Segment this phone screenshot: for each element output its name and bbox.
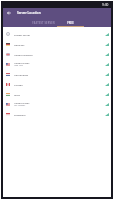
staticText: 9:30 [102,3,109,7]
staticText: Netherlands [14,73,29,76]
button[interactable]: Canada [3,79,111,89]
staticText: United States [14,101,30,104]
button[interactable]: United States [3,99,111,109]
button[interactable]: FASTEST SERVER [30,18,57,27]
staticText: Fastest Server [14,33,31,36]
button[interactable]: Netherlands [3,69,111,79]
button[interactable]: FREE [57,18,84,27]
button[interactable]: United States [3,59,111,69]
staticText: Server Location [17,11,41,15]
staticText: Los Angeles [14,104,26,107]
button[interactable]: Back [4,8,14,18]
button[interactable]: United Kingdom [3,49,111,59]
staticText: United States [14,61,30,64]
staticText: New York [14,64,23,67]
staticText: Singapore [14,113,26,116]
button[interactable]: Germany [3,39,111,49]
button[interactable]: India [3,89,111,99]
button[interactable]: Fastest Server [3,29,111,39]
staticText: India [14,93,20,96]
staticText: FASTEST SERVER [32,21,55,25]
staticText: FREE [67,21,74,25]
staticText: Canada [14,83,23,86]
staticText: Germany [14,43,25,46]
button[interactable]: Singapore [3,109,111,119]
staticText: United Kingdom [14,53,33,56]
